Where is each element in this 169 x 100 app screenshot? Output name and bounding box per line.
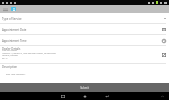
button[interactable]: Appointment Time: [0, 35, 169, 46]
button[interactable]: Dealer Details: [0, 46, 169, 64]
button[interactable]: Pick time: [161, 38, 166, 43]
button[interactable]: Type of Service: [0, 13, 169, 24]
button[interactable]: Pick date: [161, 27, 166, 32]
staticText: Description: [2, 65, 18, 69]
button[interactable]: Menu: [3, 6, 8, 12]
staticText: Nomarro-1 ,Nomarro-2 ,Near Hanuman Mandi…: [2, 52, 56, 55]
staticText: Pin : 0: [2, 57, 8, 60]
staticText: Appointment Time: [2, 39, 27, 43]
button[interactable]: Expand status bar: [160, 94, 164, 98]
button[interactable]: Appointment Date: [0, 24, 169, 35]
staticText: Haryana, Gurgaon: [2, 54, 18, 57]
button[interactable]: Back: [103, 93, 110, 100]
button[interactable]: Recent apps: [59, 93, 66, 100]
button[interactable]: Submit: [0, 83, 169, 92]
button[interactable]: max 1000 character...: [6, 73, 166, 76]
staticText: Appointment Date: [2, 28, 27, 32]
button[interactable]: Edit dealer details: [161, 52, 166, 57]
staticText: Dealer Details: [2, 47, 21, 51]
button[interactable]: Home: [81, 93, 88, 100]
button[interactable]: App home: [11, 7, 16, 11]
staticText: max 1000 character...: [6, 73, 26, 76]
staticText: Type of Service: [2, 17, 22, 21]
staticText: Submit: [80, 86, 89, 90]
button[interactable]: Select service type: [163, 17, 166, 20]
staticText: Auto Tech Motors: [2, 49, 18, 52]
